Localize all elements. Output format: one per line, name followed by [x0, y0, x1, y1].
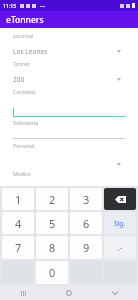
staticText: Sig.: [114, 219, 126, 228]
button[interactable]: 4: [2, 212, 34, 234]
staticText: Medico: [13, 170, 31, 177]
staticText: 5: [49, 216, 56, 231]
button[interactable]: Los Leones: [13, 46, 121, 56]
staticText: 4: [15, 216, 22, 231]
button[interactable]: 200: [13, 74, 121, 84]
staticText: sucursal: [13, 32, 34, 39]
button[interactable]: 3: [70, 188, 102, 210]
button[interactable]: 1: [2, 188, 34, 210]
button[interactable]: Home: [46, 286, 92, 300]
button[interactable]: 9: [70, 236, 102, 259]
staticText: 200: [13, 75, 25, 84]
button[interactable]: Comma and period: [104, 236, 136, 259]
button[interactable]: [13, 105, 125, 117]
button[interactable]: Recent apps: [0, 286, 46, 300]
staticText: 1: [15, 192, 22, 207]
staticText: 6: [83, 216, 90, 231]
staticText: 7: [15, 240, 22, 255]
staticText: Cantidad: [13, 88, 35, 95]
staticText: 2: [49, 192, 56, 207]
button[interactable]: Expand Medico: [0, 161, 121, 167]
button[interactable]: Sig.: [104, 212, 136, 234]
button[interactable]: 8: [36, 236, 68, 259]
staticText: ,-: [118, 243, 122, 252]
button[interactable]: 0: [36, 261, 68, 284]
button[interactable]: 6: [70, 212, 102, 234]
staticText: 0: [49, 265, 56, 280]
staticText: Tonner: [13, 60, 31, 67]
staticText: 3: [83, 192, 90, 207]
staticText: 9: [83, 240, 90, 255]
staticText: eTonners: [6, 14, 44, 26]
staticText: 11:15: [3, 2, 17, 9]
staticText: Los Leones: [13, 47, 48, 56]
button[interactable]: Backspace: [104, 188, 136, 210]
button[interactable]: 7: [2, 236, 34, 259]
button[interactable]: Hide keyboard: [92, 286, 138, 300]
button[interactable]: 2: [36, 188, 68, 210]
staticText: Solicitante: [13, 119, 39, 126]
button[interactable]: 5: [36, 212, 68, 234]
staticText: 8: [49, 240, 56, 255]
staticText: Personal: [13, 142, 35, 149]
